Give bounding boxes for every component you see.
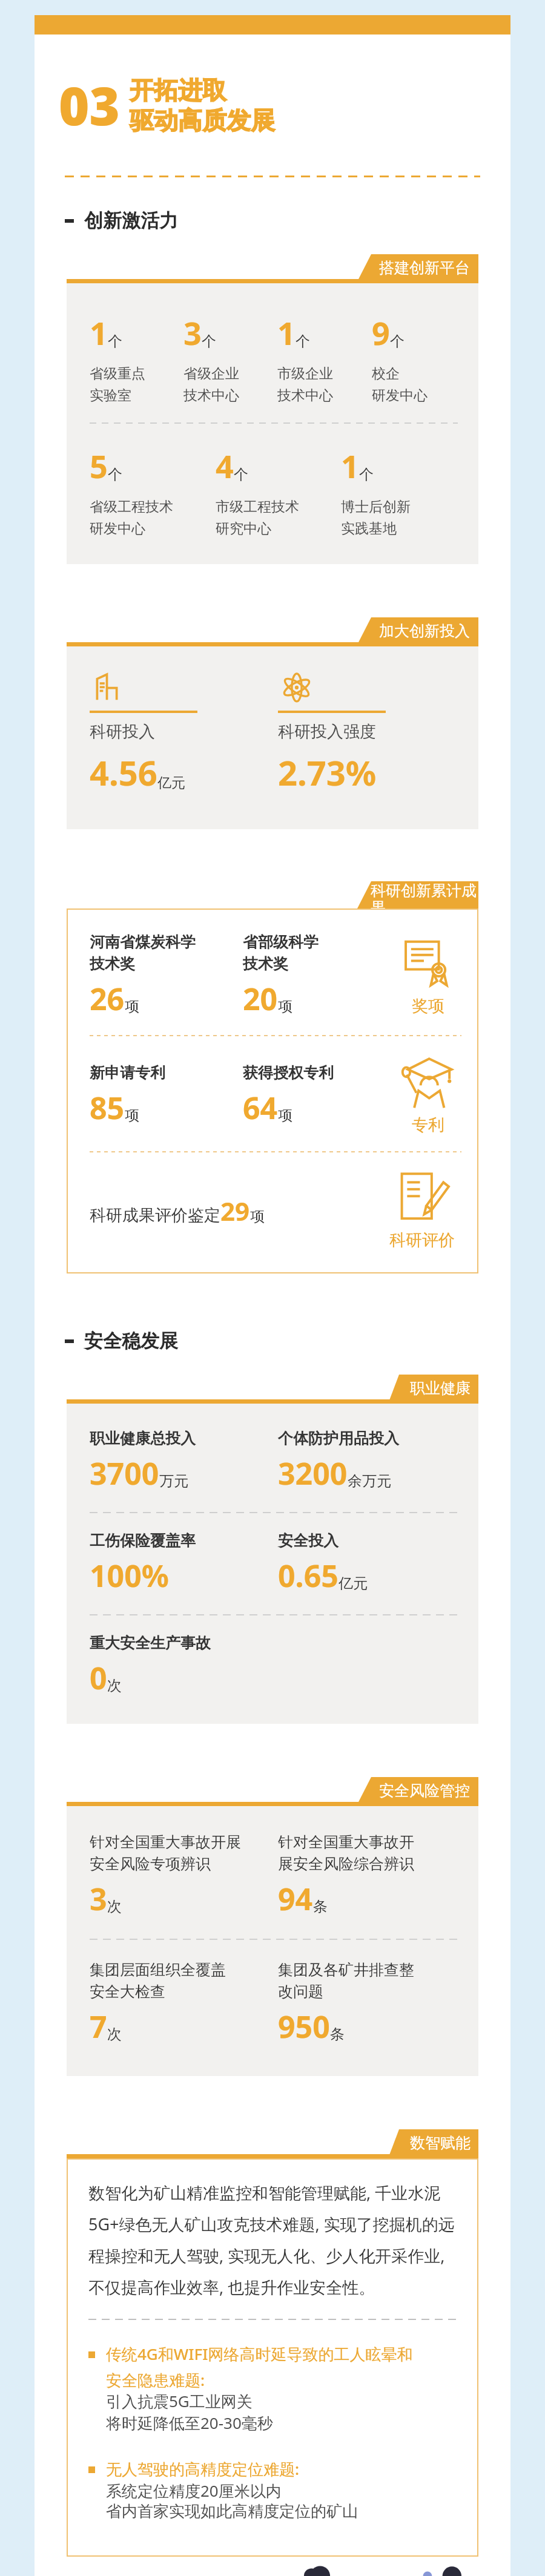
- staticText: 系统定位精度20厘米以内: [106, 2480, 282, 2502]
- staticText: 搭建创新平台: [379, 258, 470, 277]
- staticText: 河南省煤炭科学 技术奖: [90, 933, 196, 973]
- staticText: 科研成果评价鉴定: [90, 1205, 220, 1226]
- staticText: 条: [330, 2025, 345, 2043]
- staticText: 64: [243, 1087, 278, 1128]
- staticText: 安全风险管控: [379, 1781, 470, 1800]
- staticText: 个体防护用品投入: [278, 1429, 399, 1448]
- staticText: 安全投入: [278, 1531, 339, 1550]
- staticText: 亿元: [157, 774, 185, 792]
- staticText: 开拓进取: [130, 75, 226, 105]
- staticText: 获得授权专利: [243, 1063, 334, 1082]
- staticText: 奖项: [412, 996, 444, 1016]
- staticText: 个: [296, 332, 310, 350]
- staticText: 将时延降低至20-30毫秒: [106, 2412, 273, 2434]
- staticText: 无人驾驶的高精度定位难题:: [106, 2458, 300, 2480]
- staticText: 加大创新投入: [379, 622, 470, 640]
- button[interactable]: 安全稳发展: [35, 1329, 510, 1353]
- staticText: 次: [107, 2025, 122, 2043]
- staticText: 安全稳发展: [84, 1329, 178, 1353]
- staticText: 29: [220, 1194, 250, 1228]
- staticText: 100%: [90, 1555, 169, 1596]
- staticText: 驱动高质发展: [130, 105, 275, 136]
- button[interactable]: 安全风险管控: [357, 1777, 478, 1804]
- staticText: 项: [125, 997, 139, 1016]
- staticText: 工伤保险覆盖率: [90, 1531, 196, 1550]
- staticText: 创新激活力: [84, 209, 178, 232]
- staticText: 针对全国重大事故开 展安全风险综合辨识: [278, 1833, 414, 1873]
- staticText: 亿元: [339, 1574, 368, 1592]
- staticText: 万元: [159, 1472, 188, 1490]
- staticText: 个: [202, 332, 216, 350]
- staticText: 个: [108, 465, 122, 484]
- staticText: 7: [90, 2006, 107, 2047]
- staticText: 个: [108, 332, 122, 350]
- button[interactable]: 创新激活力: [35, 209, 510, 232]
- staticText: 省级重点 实验室: [90, 365, 145, 404]
- staticText: 省部级科学 技术奖: [243, 933, 319, 973]
- staticText: 次: [107, 1897, 122, 1916]
- staticText: 4.56: [90, 749, 157, 795]
- staticText: 市级企业 技术中心: [277, 365, 333, 404]
- staticText: 项: [125, 1106, 139, 1125]
- staticText: 20: [243, 978, 278, 1019]
- button[interactable]: [35, 15, 510, 34]
- staticText: 1: [277, 311, 296, 354]
- staticText: 1: [341, 444, 359, 487]
- staticText: 省级工程技术 研发中心: [90, 498, 173, 537]
- staticText: 9: [372, 311, 390, 354]
- staticText: 94: [278, 1878, 313, 1919]
- staticText: 引入抗震5G工业网关: [106, 2390, 253, 2412]
- staticText: 3200: [278, 1453, 348, 1494]
- staticText: 科研投入强度: [278, 721, 376, 742]
- staticText: 5: [90, 444, 108, 487]
- staticText: 950: [278, 2006, 330, 2047]
- staticText: 0: [90, 1657, 107, 1698]
- staticText: 条: [313, 1897, 328, 1916]
- staticText: 个: [390, 332, 405, 350]
- staticText: 1: [90, 311, 108, 354]
- staticText: 个: [359, 465, 374, 484]
- staticText: 科研评价: [389, 1230, 455, 1250]
- staticText: 数智赋能: [410, 2134, 471, 2152]
- button[interactable]: 搭建创新平台: [357, 254, 478, 281]
- staticText: 次: [107, 1677, 122, 1695]
- staticText: 余万元: [348, 1472, 391, 1490]
- staticText: 校企 研发中心: [372, 365, 428, 404]
- staticText: 科研创新累计成果: [371, 881, 478, 908]
- button[interactable]: 数智赋能: [389, 2129, 478, 2157]
- button[interactable]: 职业健康: [389, 1375, 478, 1402]
- staticText: 个: [234, 465, 248, 484]
- staticText: 2.73%: [278, 749, 377, 795]
- staticText: 市级工程技术 研究中心: [216, 498, 299, 537]
- staticText: 职业健康总投入: [90, 1429, 196, 1448]
- staticText: 项: [278, 1106, 292, 1125]
- staticText: 重大安全生产事故: [90, 1634, 211, 1652]
- staticText: 针对全国重大事故开展 安全风险专项辨识: [90, 1833, 241, 1873]
- staticText: 职业健康: [410, 1379, 471, 1398]
- staticText: 集团及各矿井排查整 改问题: [278, 1960, 414, 2001]
- staticText: 专利: [412, 1115, 444, 1135]
- staticText: 85: [90, 1087, 125, 1128]
- button[interactable]: 科研创新累计成果: [357, 881, 478, 908]
- staticText: 新申请专利: [90, 1063, 165, 1082]
- staticText: 传统4G和WIFI网络高时延导致的工人眩晕和 安全隐患难题:: [106, 2343, 413, 2390]
- staticText: 0.65: [278, 1555, 339, 1596]
- staticText: 科研投入: [90, 721, 155, 742]
- staticText: 3: [183, 311, 202, 354]
- staticText: 数智化为矿山精准监控和智能管理赋能, 千业水泥5G+绿色无人矿山攻克技术难题, …: [88, 2181, 463, 2298]
- button[interactable]: 加大创新投入: [357, 617, 478, 645]
- staticText: 3: [90, 1878, 107, 1919]
- staticText: 项: [278, 997, 292, 1016]
- staticText: 集团层面组织全覆盖 安全大检查: [90, 1960, 226, 2001]
- staticText: 3700: [90, 1453, 159, 1494]
- staticText: 项: [250, 1207, 265, 1226]
- staticText: 26: [90, 978, 125, 1019]
- staticText: 省级企业 技术中心: [183, 365, 239, 404]
- staticText: 4: [216, 444, 234, 487]
- staticText: 博士后创新 实践基地: [341, 498, 411, 537]
- staticText: 03: [59, 70, 120, 140]
- staticText: 省内首家实现如此高精度定位的矿山: [106, 2502, 358, 2522]
